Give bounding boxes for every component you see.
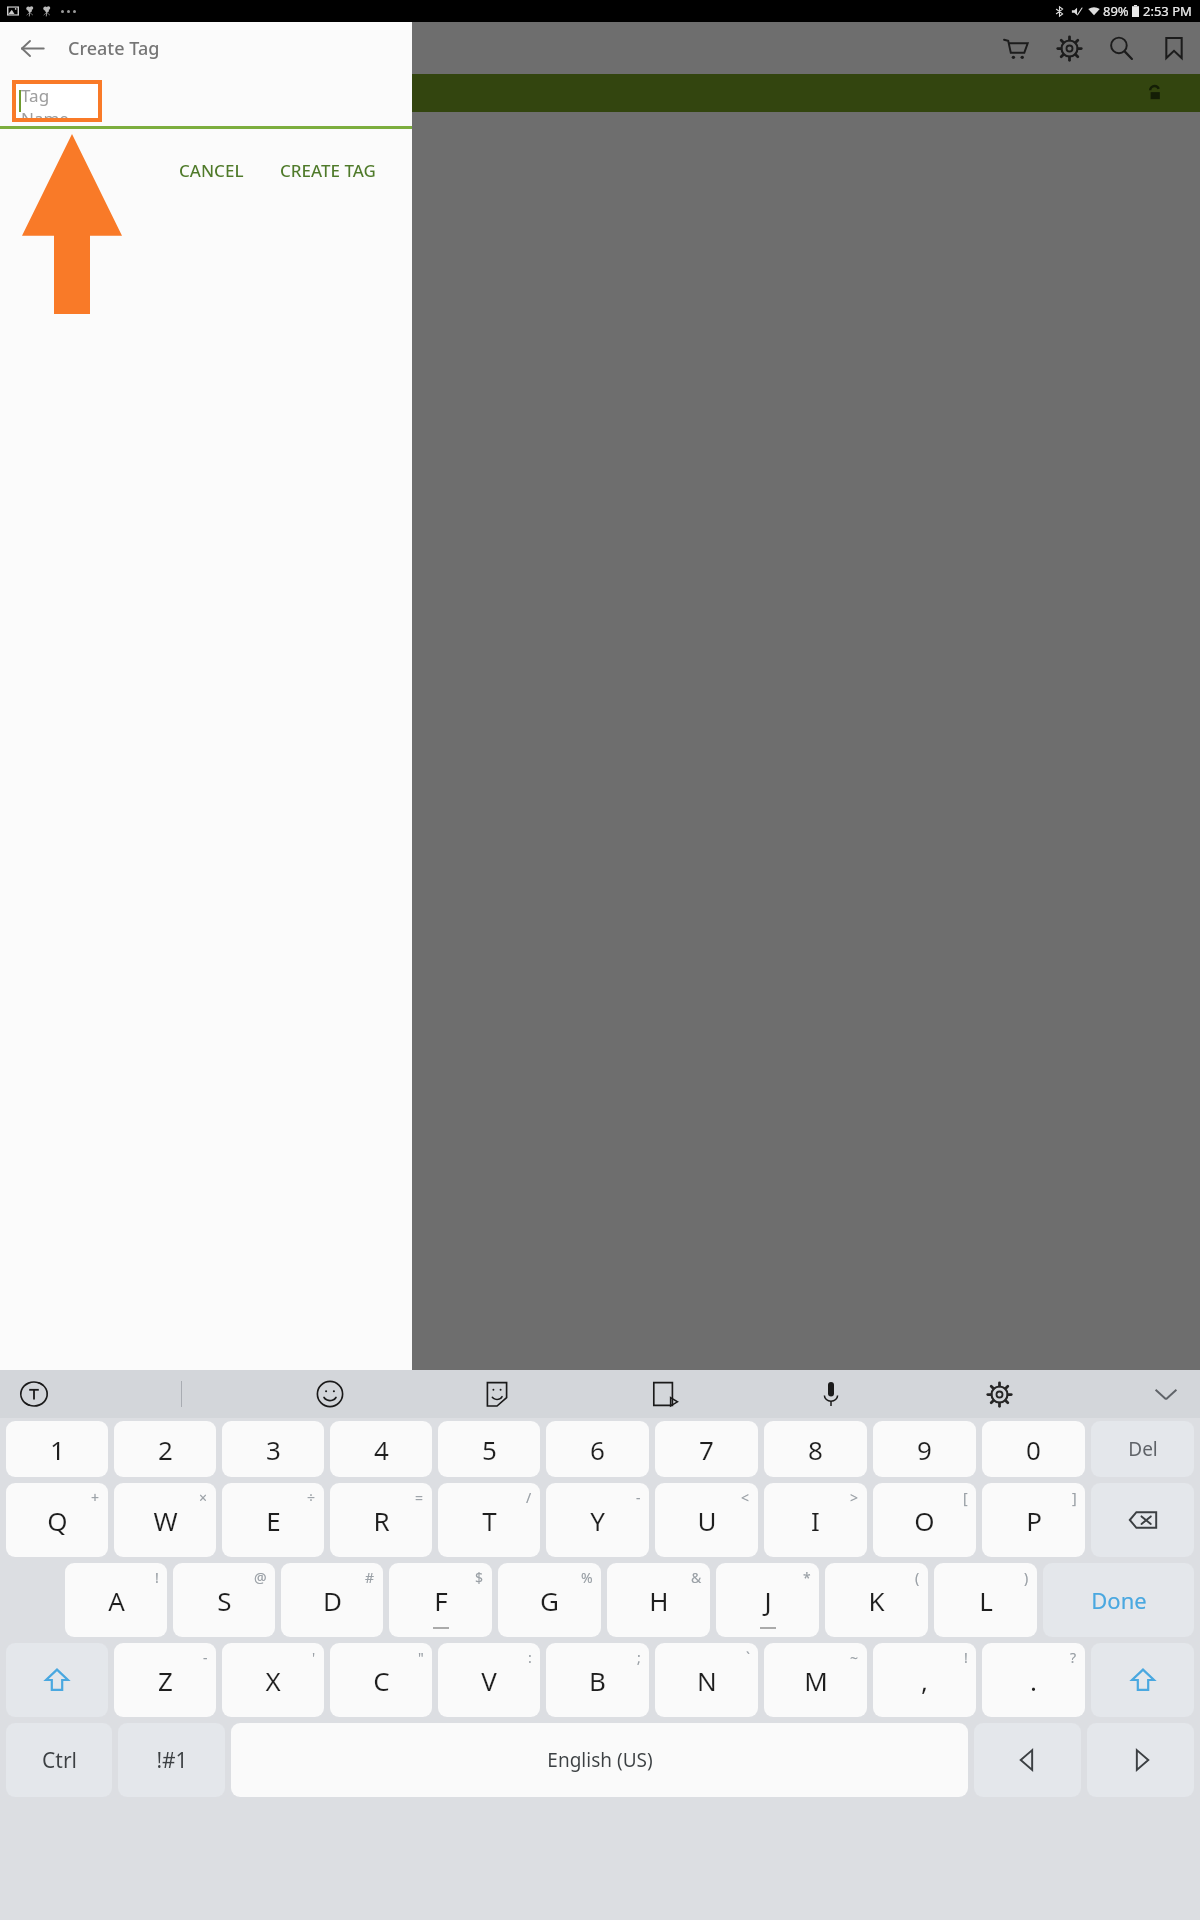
button[interactable]: backspace	[1091, 1483, 1194, 1557]
button[interactable]: 6	[546, 1421, 649, 1477]
button[interactable]: R	[330, 1483, 432, 1557]
button[interactable]: Hide keyboard	[1146, 1374, 1186, 1414]
button[interactable]: Tag Name	[16, 84, 98, 118]
button[interactable]: Y	[546, 1483, 649, 1557]
staticText: ?	[1070, 1648, 1077, 1667]
staticText: +	[91, 1488, 100, 1507]
button[interactable]: E	[222, 1483, 324, 1557]
button[interactable]: T	[438, 1483, 540, 1557]
button[interactable]: H	[607, 1563, 710, 1637]
button[interactable]: right	[1087, 1723, 1194, 1797]
button[interactable]: 5	[438, 1421, 540, 1477]
button[interactable]: A	[65, 1563, 167, 1637]
button[interactable]: GIF	[644, 1374, 684, 1414]
staticText: 7	[699, 1432, 714, 1467]
button[interactable]: Voice input	[811, 1374, 851, 1414]
button[interactable]: Keyboard settings	[979, 1374, 1019, 1414]
button[interactable]: Done	[1043, 1563, 1194, 1637]
button[interactable]: 0	[982, 1421, 1085, 1477]
button[interactable]: 2	[114, 1421, 216, 1477]
staticText: G	[540, 1583, 559, 1618]
button[interactable]: ,	[873, 1643, 976, 1717]
staticText: :	[528, 1648, 532, 1667]
staticText: 4	[374, 1432, 389, 1467]
button[interactable]: CANCEL	[169, 151, 254, 190]
button[interactable]: .	[982, 1643, 1085, 1717]
button[interactable]: F	[389, 1563, 492, 1637]
staticText: (	[915, 1568, 920, 1587]
button[interactable]: shift	[1091, 1643, 1194, 1717]
button[interactable]: N	[655, 1643, 758, 1717]
staticText: Q	[47, 1503, 68, 1538]
button[interactable]: shift	[6, 1643, 108, 1717]
staticText: N	[697, 1663, 717, 1698]
button[interactable]: L	[934, 1563, 1037, 1637]
button[interactable]: Q	[6, 1483, 108, 1557]
button[interactable]: G	[498, 1563, 601, 1637]
button[interactable]: U	[655, 1483, 758, 1557]
staticText: *	[803, 1568, 811, 1587]
staticText: 1	[50, 1432, 65, 1467]
button[interactable]: I	[764, 1483, 867, 1557]
staticText: 89%	[1103, 2, 1129, 20]
button[interactable]: CREATE TAG	[270, 151, 386, 190]
button[interactable]: 8	[764, 1421, 867, 1477]
staticText: O	[914, 1503, 935, 1538]
staticText: #	[365, 1568, 375, 1587]
button[interactable]: Z	[114, 1643, 216, 1717]
button[interactable]: P	[982, 1483, 1085, 1557]
button[interactable]: X	[222, 1643, 324, 1717]
button[interactable]: Stickers	[477, 1374, 517, 1414]
button[interactable]: 4	[330, 1421, 432, 1477]
button[interactable]: W	[114, 1483, 216, 1557]
button[interactable]: K	[825, 1563, 928, 1637]
button[interactable]: Ctrl	[6, 1723, 112, 1797]
staticText: 9	[917, 1432, 932, 1467]
button[interactable]: English (US)	[231, 1723, 968, 1797]
button[interactable]: S	[173, 1563, 275, 1637]
other: Settings	[1057, 36, 1082, 61]
button[interactable]: B	[546, 1643, 649, 1717]
staticText: 3	[266, 1432, 281, 1467]
staticText: '	[312, 1648, 316, 1667]
other: Bookmark	[1162, 36, 1186, 60]
staticText: ;	[637, 1648, 641, 1667]
staticText: 8	[808, 1432, 823, 1467]
button[interactable]: Translate	[14, 1374, 54, 1414]
staticText: M	[804, 1663, 828, 1698]
button[interactable]: !#1	[118, 1723, 225, 1797]
button[interactable]: left	[974, 1723, 1081, 1797]
button[interactable]: 3	[222, 1421, 324, 1477]
staticText: S	[217, 1583, 232, 1618]
button[interactable]: 9	[873, 1421, 976, 1477]
button[interactable]: V	[438, 1643, 540, 1717]
button[interactable]: M	[764, 1643, 867, 1717]
button[interactable]: C	[330, 1643, 432, 1717]
staticText: !	[155, 1568, 159, 1587]
staticText: Ctrl	[42, 1746, 77, 1775]
staticText: A	[108, 1583, 125, 1618]
staticText: Tag Name	[21, 84, 98, 118]
staticText: Del	[1128, 1436, 1158, 1462]
staticText: when I was a child, I	[24, 116, 242, 147]
staticText: English (US)	[547, 1747, 653, 1773]
button[interactable]: Del	[1091, 1421, 1194, 1477]
staticText: 6	[590, 1432, 605, 1467]
button[interactable]: 1	[6, 1421, 108, 1477]
button[interactable]: D	[281, 1563, 383, 1637]
staticText: =	[415, 1488, 424, 1507]
staticText: -	[636, 1488, 641, 1507]
button[interactable]: Back	[10, 26, 54, 70]
staticText: reasoned like a child.	[24, 162, 251, 193]
button[interactable]: O	[873, 1483, 976, 1557]
button[interactable]: J	[716, 1563, 819, 1637]
staticText: 2:53 PM	[1143, 2, 1192, 20]
button[interactable]: Emoji	[310, 1374, 350, 1414]
staticText: 5	[482, 1432, 497, 1467]
button[interactable]: 7	[655, 1421, 758, 1477]
